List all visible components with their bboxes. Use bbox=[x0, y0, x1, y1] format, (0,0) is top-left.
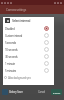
staticText: 5 minutes bbox=[5, 69, 44, 73]
staticText: Allow background sync bbox=[8, 76, 31, 80]
staticText: Disabled bbox=[5, 27, 44, 31]
staticText: 10 seconds bbox=[5, 48, 44, 52]
staticText: Camera settings bbox=[6, 8, 26, 12]
button[interactable]: Camera settings bbox=[0, 5, 64, 14]
button[interactable]: 10 seconds bbox=[3, 46, 54, 53]
staticText: INSTALL bbox=[53, 91, 61, 94]
staticText: Battery Saver bbox=[9, 90, 23, 94]
button[interactable]: 5 minutes bbox=[3, 67, 54, 74]
staticText: Cancel bbox=[38, 90, 45, 94]
button[interactable]: Custom interval bbox=[3, 32, 54, 39]
button[interactable]: 30 seconds bbox=[3, 53, 54, 60]
button[interactable]: Disabled bbox=[3, 25, 54, 32]
button[interactable]: 1 minute bbox=[3, 60, 54, 67]
other: App icon bbox=[5, 18, 10, 23]
button[interactable]: INSTALL bbox=[51, 89, 62, 95]
button[interactable]: Cancel bbox=[37, 89, 46, 95]
button[interactable]: 5 seconds bbox=[3, 39, 54, 46]
staticText: Custom interval bbox=[5, 34, 44, 38]
button[interactable]: Allow background sync bbox=[3, 74, 54, 81]
staticText: 1 minute bbox=[5, 62, 44, 66]
staticText: Select internal bbox=[12, 18, 30, 23]
staticText: 30 seconds bbox=[5, 55, 44, 59]
staticText: 5 seconds bbox=[5, 41, 44, 45]
